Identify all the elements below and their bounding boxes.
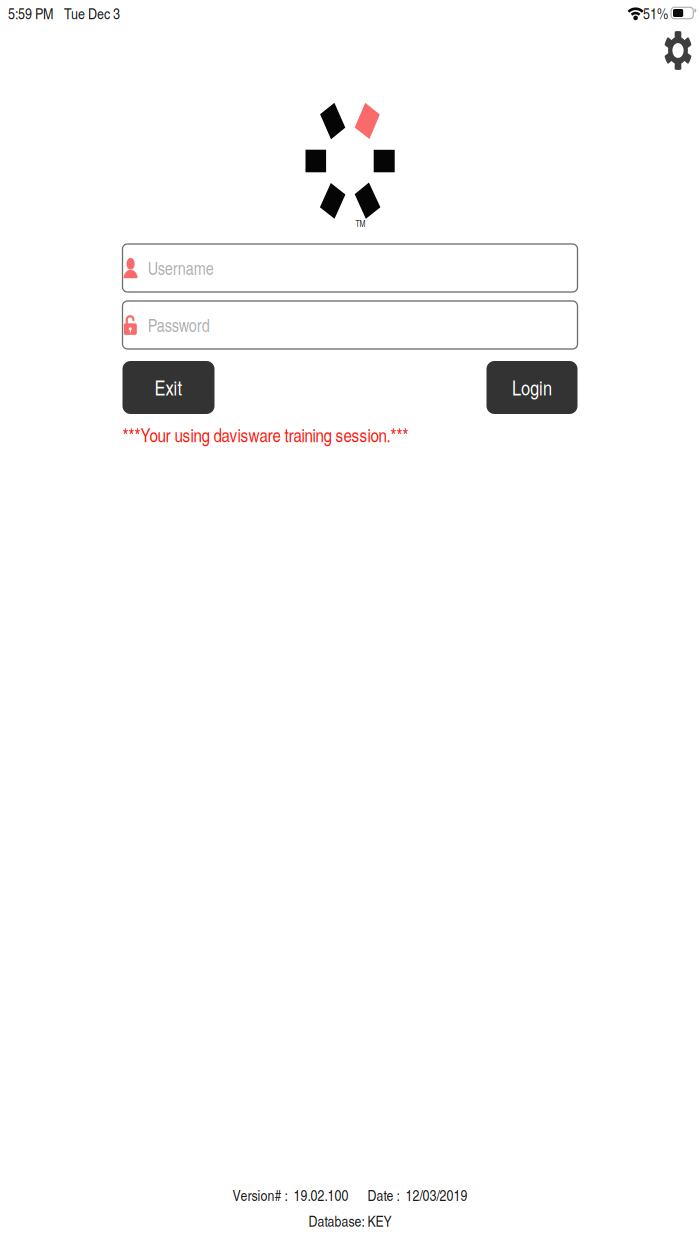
staticText: Exit [154,374,182,401]
staticText: Version# : 19.02.100 [232,1185,348,1205]
button[interactable]: Login [486,361,577,414]
staticText: Tue Dec 3 [64,2,120,23]
button[interactable]: Exit [122,361,214,414]
staticText: Date : 12/03/2019 [367,1185,467,1205]
staticText: Database: KEY [308,1210,391,1231]
button[interactable]: Settings [664,27,700,74]
staticText: ***Your using davisware training session… [122,422,408,447]
staticText: Login [512,374,552,401]
staticText: Password [148,313,210,337]
staticText: 51% [643,2,668,23]
staticText: Username [148,256,214,280]
staticText: 5:59 PM [8,2,53,23]
staticText: TM [355,218,365,229]
